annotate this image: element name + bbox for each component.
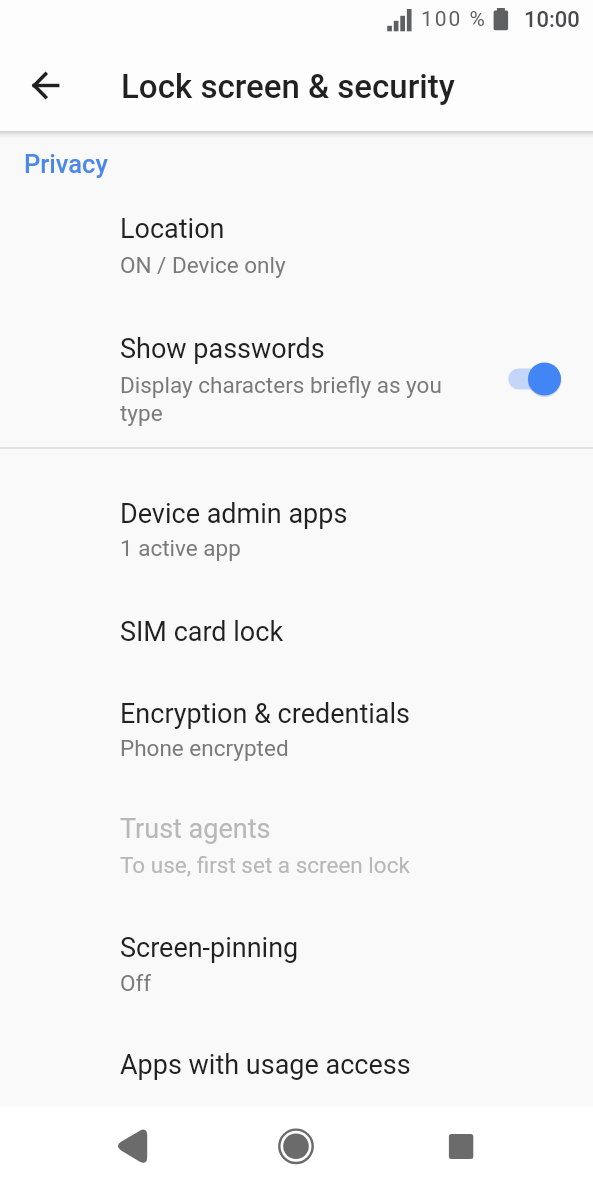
button[interactable]: Screen-pinning (0, 897, 593, 1015)
button[interactable] (263, 1106, 329, 1186)
staticText: Show passwords (120, 333, 325, 365)
staticText: Encryption & credentials (120, 698, 410, 730)
staticText: ON / Device only (120, 252, 286, 278)
button[interactable]: Location (0, 188, 593, 307)
staticText: 100 % (421, 7, 487, 32)
staticText: SIM card lock (120, 616, 284, 648)
staticText: Privacy (24, 149, 108, 179)
button[interactable]: Apps with usage access (0, 1015, 593, 1106)
staticText: Display characters briefly as you (120, 372, 442, 398)
staticText: type (120, 400, 163, 426)
button[interactable]: Trust agents (0, 779, 593, 897)
staticText: Phone encrypted (120, 735, 289, 761)
button[interactable] (99, 1106, 165, 1186)
staticText: Lock screen & security (121, 67, 455, 106)
staticText: Apps with usage access (120, 1049, 411, 1081)
staticText: Location (120, 213, 225, 245)
button[interactable]: Encryption & credentials (0, 661, 593, 779)
button[interactable] (18, 58, 74, 114)
button[interactable] (428, 1106, 494, 1186)
staticText: 10:00 (524, 7, 580, 33)
staticText: To use, first set a screen lock (120, 852, 410, 878)
button[interactable]: SIM card lock (0, 579, 593, 661)
button[interactable]: Device admin apps (0, 449, 593, 579)
staticText: Device admin apps (120, 498, 348, 530)
staticText: 1 active app (120, 535, 241, 561)
staticText: Off (120, 970, 152, 996)
staticText: Trust agents (120, 813, 271, 845)
staticText: Screen-pinning (120, 932, 299, 964)
button[interactable] (500, 355, 570, 403)
button[interactable]: Show passwords (0, 307, 593, 447)
